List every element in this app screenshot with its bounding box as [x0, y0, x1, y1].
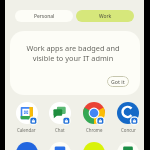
button[interactable]: Concur	[111, 102, 145, 133]
staticText: Personal	[34, 13, 55, 20]
button[interactable]: Calendar	[10, 102, 43, 133]
other: App	[49, 142, 71, 150]
other: Concur	[117, 102, 139, 124]
staticText: Work	[99, 13, 112, 20]
other: Chat	[49, 102, 71, 124]
staticText: Got it	[111, 78, 125, 85]
button[interactable]: Chrome	[77, 102, 111, 133]
other: Calendar	[16, 102, 38, 124]
other: App	[117, 142, 139, 150]
button[interactable]: App	[10, 142, 43, 150]
staticText: Chrome	[86, 127, 103, 133]
button[interactable]: App	[43, 142, 77, 150]
button[interactable]: Personal	[15, 10, 73, 22]
staticText: Chat	[55, 127, 65, 133]
button[interactable]: App	[111, 142, 145, 150]
staticText: Concur	[121, 127, 136, 133]
other: Chrome	[83, 102, 105, 124]
button[interactable]: App	[77, 142, 111, 150]
button[interactable]: Work	[76, 10, 134, 22]
staticText: Calendar	[17, 127, 36, 133]
button[interactable]: Chat	[43, 102, 77, 133]
staticText: Work apps are badged and visible to your…	[18, 43, 128, 63]
button[interactable]: Got it	[107, 76, 129, 87]
other: App	[83, 142, 105, 150]
other: App	[16, 142, 38, 150]
